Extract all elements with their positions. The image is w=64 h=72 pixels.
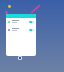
button[interactable]: Toggle xyxy=(29,29,34,31)
button[interactable]: Toggle xyxy=(6,19,36,24)
button[interactable]: Toggle xyxy=(6,27,36,32)
button[interactable] xyxy=(6,14,36,18)
button[interactable]: Toggle xyxy=(29,21,34,23)
